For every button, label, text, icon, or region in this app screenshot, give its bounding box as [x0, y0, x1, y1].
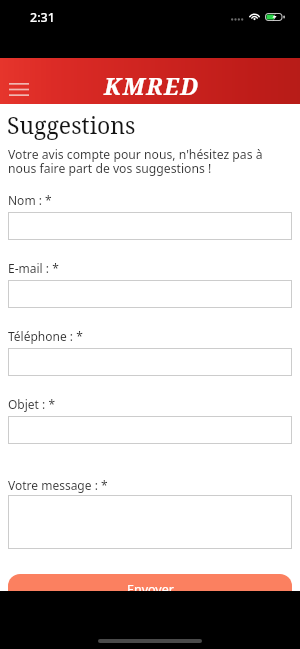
button[interactable]: [8, 416, 292, 444]
staticText: KMRED: [104, 70, 200, 101]
staticText: Objet : *: [8, 396, 56, 412]
staticText: Votre avis compte pour nous, n'hésitez p…: [8, 146, 270, 177]
staticText: Suggestions: [7, 109, 136, 140]
button[interactable]: [8, 495, 292, 549]
staticText: Envoyer: [127, 581, 174, 598]
button[interactable]: Envoyer: [8, 574, 292, 610]
button[interactable]: [8, 280, 292, 308]
staticText: Nom : *: [8, 192, 52, 208]
button[interactable]: [8, 212, 292, 240]
staticText: Téléphone : *: [8, 328, 83, 344]
staticText: 2:31: [30, 9, 55, 26]
button[interactable]: Open navigation menu: [1, 67, 37, 104]
button[interactable]: [8, 348, 292, 376]
staticText: Votre message : *: [8, 477, 108, 493]
staticText: E-mail : *: [8, 260, 59, 276]
